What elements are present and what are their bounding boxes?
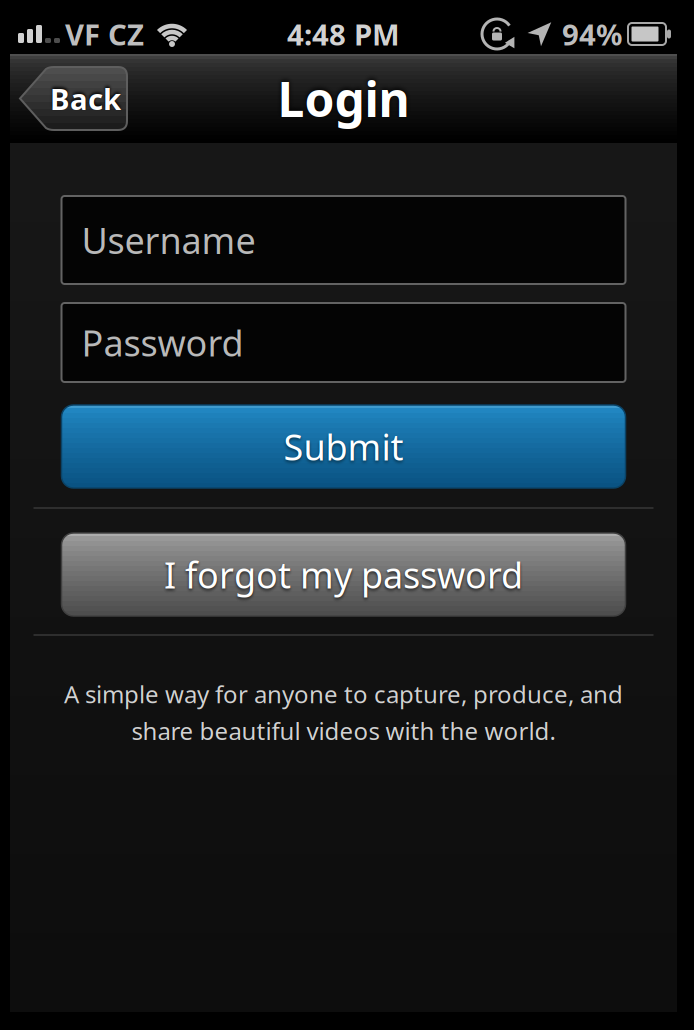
button[interactable]: Password: [61, 303, 625, 382]
staticText: I forgot my password: [164, 551, 523, 598]
staticText: Back: [50, 79, 121, 118]
staticText: VF CZ: [65, 14, 144, 53]
button[interactable]: Submit: [61, 405, 625, 488]
staticText: Submit: [283, 423, 403, 470]
button[interactable]: I forgot my password: [61, 533, 625, 616]
button[interactable]: Back: [20, 67, 127, 130]
staticText: 4:48 PM: [287, 14, 400, 53]
staticText: Login: [277, 67, 409, 130]
staticText: Password: [81, 319, 243, 366]
button[interactable]: Username: [61, 196, 625, 284]
staticText: Username: [81, 216, 255, 264]
staticText: 94%: [562, 14, 622, 53]
staticText: share beautiful videos with the world.: [131, 715, 555, 747]
staticText: A simple way for anyone to capture, prod…: [64, 678, 623, 710]
